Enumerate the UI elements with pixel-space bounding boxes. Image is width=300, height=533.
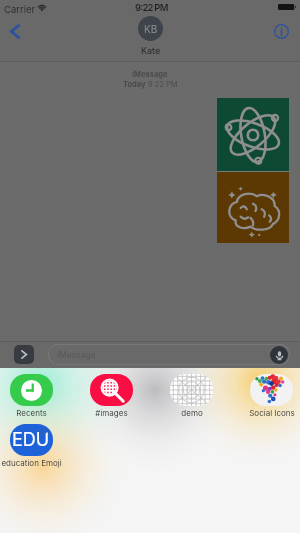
staticText: 9:22 PM: [135, 2, 168, 13]
staticText: Recents: [16, 408, 47, 418]
staticText: Social Icons: [249, 408, 295, 418]
staticText: education Emoji: [1, 458, 62, 468]
staticText: demo: [181, 408, 203, 418]
button[interactable]: [217, 98, 289, 243]
button[interactable]: demo: [170, 374, 213, 418]
button[interactable]: KB: [138, 16, 163, 56]
staticText: Carrier: [4, 4, 36, 15]
button[interactable]: Dictate: [270, 346, 288, 364]
staticText: iMessage: [57, 350, 96, 360]
button[interactable]: EDU: [10, 424, 53, 468]
button[interactable]: Recents: [10, 374, 53, 418]
staticText: Today: [123, 80, 148, 89]
button[interactable]: Back: [0, 18, 30, 44]
button[interactable]: Social Icons: [250, 374, 293, 418]
staticText: Kate: [141, 45, 161, 56]
staticText: iMessage: [132, 70, 168, 79]
staticText: #images: [95, 408, 128, 418]
button[interactable]: #images: [90, 374, 133, 418]
staticText: KB: [144, 23, 158, 35]
button[interactable]: iMessage: [48, 344, 290, 365]
button[interactable]: Open apps: [14, 345, 34, 364]
staticText: EDU: [12, 429, 50, 451]
staticText: 9:22 PM: [148, 80, 178, 89]
button[interactable]: Details: [266, 19, 296, 44]
